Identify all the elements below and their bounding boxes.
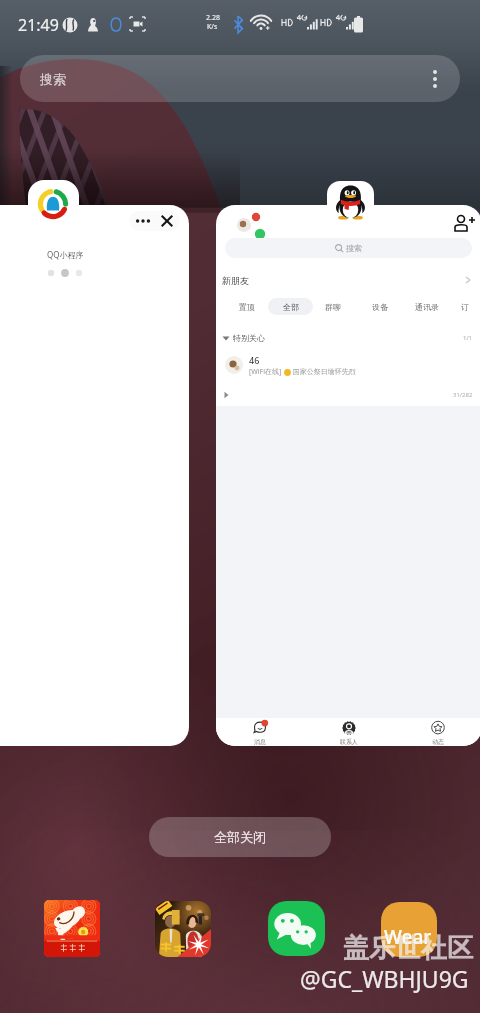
button[interactable]: 通讯录 — [405, 297, 449, 316]
button[interactable]: 动态 — [393, 718, 480, 746]
staticText: 全部 — [283, 302, 299, 312]
button[interactable]: 全部 — [269, 297, 313, 316]
button[interactable]: Add friend — [216, 205, 480, 746]
staticText: 搜索 — [40, 71, 66, 87]
button[interactable]: 订 — [443, 297, 480, 316]
staticText: K/s — [207, 22, 218, 32]
staticText: 消息 — [254, 738, 266, 746]
button[interactable]: Close — [155, 211, 179, 231]
button[interactable]: JD — [44, 900, 100, 957]
button[interactable]: Game — [155, 901, 211, 957]
staticText: @GC_WBHJU9G — [300, 963, 469, 994]
staticText: 21:49 — [18, 14, 59, 36]
staticText: 联系人 — [340, 738, 358, 746]
button[interactable]: More options — [423, 67, 447, 91]
button[interactable]: 新朋友 — [216, 269, 480, 291]
button[interactable]: More options — [131, 211, 155, 231]
staticText: 盖乐世社区 — [343, 932, 473, 965]
button[interactable]: 群聊 — [311, 297, 355, 316]
staticText: 置顶 — [239, 302, 255, 312]
staticText: 搜索 — [346, 243, 362, 253]
button[interactable]: 消息 — [216, 718, 304, 746]
staticText: 通讯录 — [415, 302, 439, 312]
staticText: 国家公祭日缅怀先烈 — [291, 367, 356, 377]
button[interactable]: More options — [0, 205, 189, 746]
staticText: 31/282 — [453, 391, 473, 399]
staticText: 设备 — [372, 302, 388, 312]
button[interactable]: 全部关闭 — [149, 817, 331, 857]
staticText: 动态 — [432, 738, 444, 746]
button[interactable]: 联系人 — [304, 718, 393, 746]
button[interactable]: 搜索 — [20, 55, 460, 102]
button[interactable]: 置顶 — [225, 297, 269, 316]
staticText: [WiFi在线] — [249, 367, 284, 377]
staticText: QQ小程序 — [47, 249, 84, 260]
staticText: 1/1 — [463, 334, 473, 342]
staticText: 特别关心 — [233, 333, 265, 343]
button[interactable]: 设备 — [358, 297, 402, 316]
button[interactable]: 31/282 — [216, 387, 480, 403]
button[interactable]: Wear — [381, 902, 437, 957]
staticText: 全部关闭 — [214, 829, 266, 845]
staticText: 新朋友 — [222, 275, 249, 286]
staticText: 46 — [249, 354, 260, 366]
button[interactable]: 特别关心 — [216, 329, 480, 347]
button[interactable]: 46 — [216, 349, 480, 381]
staticText: 2.28 — [206, 13, 220, 23]
button[interactable]: Add friend — [452, 213, 474, 235]
staticText: Wear — [384, 924, 432, 950]
button[interactable]: 搜索 — [225, 238, 472, 258]
staticText: 群聊 — [325, 302, 341, 312]
staticText: 订 — [461, 302, 469, 312]
button[interactable]: WeChat — [268, 901, 325, 956]
